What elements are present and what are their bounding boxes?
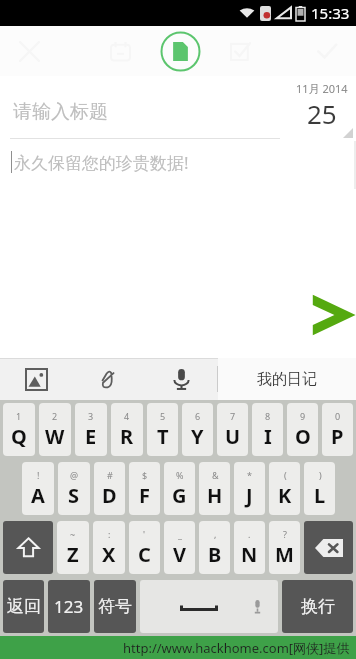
button[interactable]: Backspace [304, 521, 353, 574]
button[interactable]: 2 [39, 403, 71, 456]
staticText: R [120, 423, 134, 450]
staticText: 2 [52, 410, 58, 422]
staticText: 符号 [98, 596, 132, 617]
staticText: 换行 [301, 596, 335, 617]
staticText: & [212, 469, 219, 481]
staticText: 1 [16, 410, 22, 422]
staticText: 4 [124, 410, 130, 422]
staticText: D [102, 482, 117, 509]
staticText: K [278, 482, 292, 509]
staticText: 请输入标题 [13, 100, 108, 124]
button[interactable]: . [234, 521, 265, 574]
staticText: ' [143, 528, 146, 540]
staticText: http://www.hackhome.com[网侠]提供 [123, 639, 350, 657]
staticText: # [107, 469, 113, 481]
button[interactable]: @ [58, 462, 90, 515]
staticText: P [331, 423, 344, 450]
button[interactable]: ) [304, 462, 335, 515]
button[interactable]: 返回 [3, 580, 44, 633]
staticText: A [31, 482, 45, 509]
button[interactable]: 5 [147, 403, 178, 456]
staticText: Q [11, 423, 27, 450]
staticText: 15:33 [311, 3, 350, 23]
button[interactable]: Attach file [72, 358, 145, 400]
staticText: ( [284, 469, 287, 481]
staticText: 123 [54, 595, 84, 618]
staticText: Y [191, 423, 204, 450]
button[interactable]: ? [269, 521, 300, 574]
button[interactable]: ' [129, 521, 160, 574]
button[interactable]: 我的日记 [218, 358, 356, 400]
staticText: Z [67, 541, 79, 568]
button[interactable]: _ [164, 521, 195, 574]
staticText: F [139, 482, 150, 509]
staticText: 8 [265, 410, 271, 422]
staticText: . [248, 528, 251, 540]
button[interactable]: 1 [3, 403, 35, 456]
button[interactable]: ! [22, 462, 54, 515]
staticText: $ [142, 469, 148, 481]
button[interactable]: 8 [252, 403, 283, 456]
button[interactable]: 请输入标题 [0, 76, 288, 138]
staticText: 9 [300, 410, 306, 422]
button[interactable]: 换行 [282, 580, 353, 633]
button[interactable]: 9 [287, 403, 318, 456]
button[interactable]: 123 [48, 580, 90, 633]
button[interactable]: # [94, 462, 125, 515]
staticText: N [241, 541, 258, 568]
staticText: L [314, 482, 326, 509]
button[interactable]: 7 [217, 403, 248, 456]
button[interactable]: 11月 2014 [288, 76, 356, 139]
button[interactable]: 3 [75, 403, 107, 456]
button[interactable]: Note type [159, 30, 201, 72]
staticText: W [45, 423, 65, 450]
staticText: X [102, 541, 116, 568]
staticText: ! [37, 469, 40, 481]
button[interactable]: 符号 [94, 580, 136, 633]
button[interactable]: : [93, 521, 125, 574]
button[interactable]: Voice input [145, 358, 217, 400]
staticText: O [295, 423, 311, 450]
button[interactable]: ~ [57, 521, 89, 574]
staticText: ) [319, 469, 322, 481]
staticText: M [275, 541, 294, 568]
staticText: B [208, 541, 222, 568]
staticText: 11月 2014 [296, 81, 348, 96]
button[interactable]: 6 [182, 403, 213, 456]
button[interactable]: % [164, 462, 195, 515]
button[interactable]: & [199, 462, 230, 515]
button[interactable]: Space [140, 580, 278, 633]
staticText: 5 [160, 410, 166, 422]
staticText: E [85, 423, 97, 450]
staticText: 返回 [7, 596, 41, 617]
button[interactable]: 0 [322, 403, 353, 456]
staticText: 永久保留您的珍贵数据! [14, 151, 189, 174]
staticText: ~ [70, 528, 76, 540]
button[interactable]: Insert image [0, 358, 72, 400]
staticText: 7 [230, 410, 236, 422]
staticText: C [138, 541, 151, 568]
staticText: S [68, 482, 80, 509]
staticText: * [247, 469, 252, 481]
staticText: % [176, 469, 184, 481]
button[interactable]: Shift [3, 521, 53, 574]
button[interactable]: 永久保留您的珍贵数据! [0, 139, 356, 358]
button[interactable]: , [199, 521, 230, 574]
staticText: 我的日记 [257, 370, 317, 389]
staticText: J [246, 482, 253, 509]
button[interactable]: $ [129, 462, 160, 515]
staticText: T [157, 423, 169, 450]
button[interactable]: 4 [111, 403, 143, 456]
button[interactable]: * [234, 462, 265, 515]
staticText: , [214, 528, 217, 540]
staticText: I [264, 423, 272, 450]
staticText: @ [70, 469, 79, 481]
staticText: 0 [335, 410, 341, 422]
staticText: 3 [88, 410, 94, 422]
button[interactable]: ( [269, 462, 300, 515]
staticText: _ [178, 528, 182, 540]
